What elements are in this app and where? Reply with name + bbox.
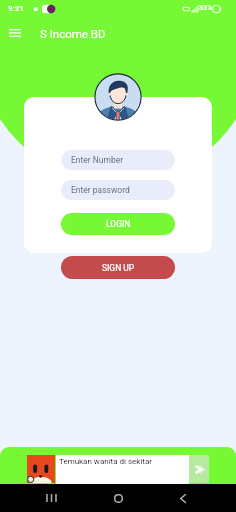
staticText: 33% (199, 4, 213, 12)
staticText: S Income BD (40, 27, 106, 40)
button[interactable]: SIGN UP (61, 256, 175, 279)
staticText: Enter Number (71, 155, 124, 165)
button[interactable]: LOGIN (61, 213, 175, 235)
staticText: 9:21 (8, 4, 24, 13)
button[interactable]: Advertisement (0, 447, 236, 484)
button[interactable]: Home (104, 484, 132, 512)
button[interactable]: Recent apps (37, 484, 65, 512)
staticText: Temukan wanita di sekitar (59, 457, 153, 466)
staticText: SIGN UP (102, 263, 135, 273)
staticText: Enter password (71, 185, 130, 195)
staticText: LOGIN (106, 219, 131, 229)
button[interactable]: Enter Number (61, 150, 175, 170)
button[interactable]: Open advertisement (189, 455, 209, 483)
button[interactable]: Open navigation menu (0, 18, 30, 48)
button[interactable]: Enter password (61, 180, 175, 200)
button[interactable]: Back (169, 484, 197, 512)
